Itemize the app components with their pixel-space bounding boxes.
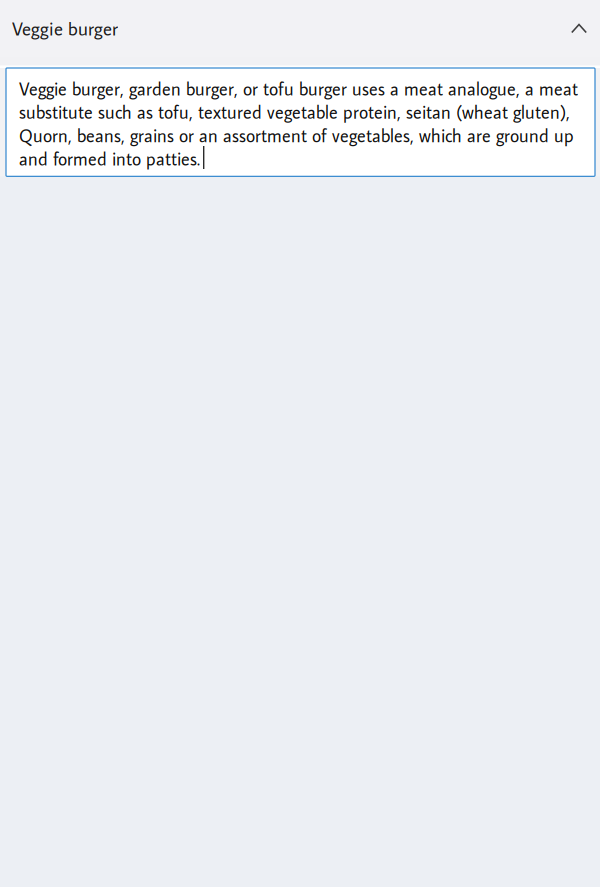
staticText: Veggie burger [12, 16, 118, 41]
button[interactable]: Collapse Veggie burger [0, 0, 600, 57]
staticText: Veggie burger, garden burger, or tofu bu… [19, 77, 578, 170]
button[interactable]: Veggie burger, garden burger, or tofu bu… [0, 68, 600, 176]
